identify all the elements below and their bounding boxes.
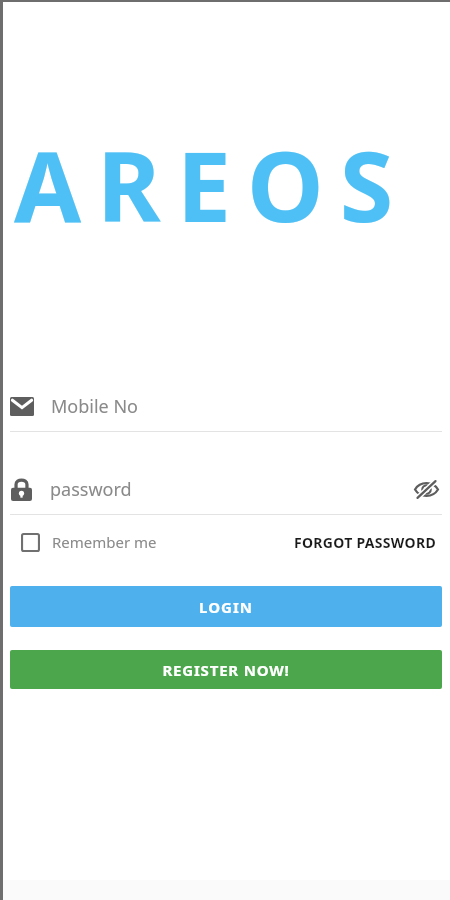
staticText: FORGOT PASSWORD xyxy=(294,533,436,552)
staticText: password xyxy=(50,477,132,502)
staticText: AREOS xyxy=(14,118,450,228)
button[interactable]: REGISTER NOW! xyxy=(10,650,442,689)
button[interactable]: Show password xyxy=(410,473,442,505)
staticText: Remember me xyxy=(52,532,157,552)
staticText: REGISTER NOW! xyxy=(162,660,290,680)
button[interactable]: FORGOT PASSWORD xyxy=(280,527,450,558)
staticText: Mobile No xyxy=(51,394,138,419)
button[interactable]: LOGIN xyxy=(10,586,442,627)
button[interactable]: Remember me xyxy=(0,528,165,556)
button[interactable]: password xyxy=(0,467,450,511)
staticText: LOGIN xyxy=(199,597,253,617)
button[interactable]: Mobile No xyxy=(0,384,450,428)
